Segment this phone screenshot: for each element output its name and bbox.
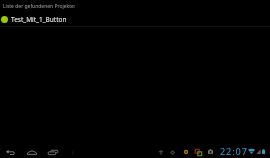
- staticText: Test_Mit_1_Button: [11, 15, 67, 24]
- button[interactable]: Test_Mit_1_Button: [0, 13, 270, 26]
- staticText: Liste der gefundenen Projekte:: [3, 3, 76, 10]
- button[interactable]: Recent apps: [44, 145, 62, 158]
- button[interactable]: Back: [2, 145, 20, 158]
- staticText: 22:07: [220, 145, 248, 158]
- button[interactable]: Home: [23, 145, 41, 158]
- button[interactable]: More options: [68, 145, 78, 158]
